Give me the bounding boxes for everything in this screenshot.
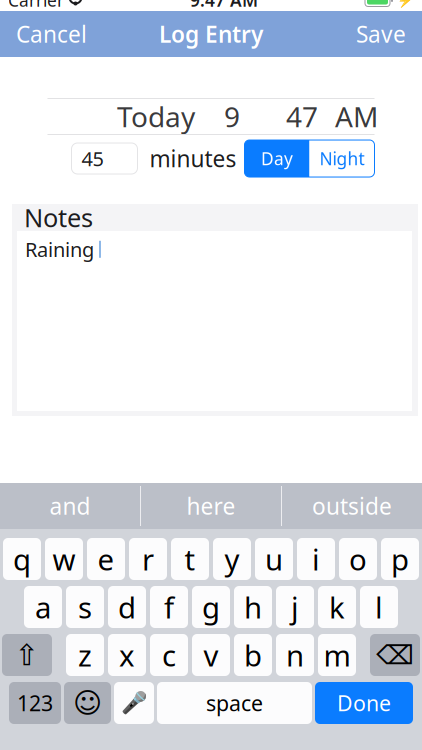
staticText: a	[35, 587, 51, 626]
button[interactable]: Done	[315, 682, 413, 724]
staticText: 123	[17, 689, 53, 717]
button[interactable]: i	[297, 538, 335, 580]
staticText: Notes	[24, 201, 93, 234]
button[interactable]: z	[66, 634, 104, 676]
button[interactable]: Day	[244, 140, 309, 177]
button[interactable]: Delete	[370, 634, 420, 676]
button[interactable]: Cancel	[0, 11, 103, 57]
staticText: outside	[312, 491, 392, 521]
button[interactable]: t	[171, 538, 209, 580]
staticText: y	[224, 539, 239, 578]
button[interactable]: y	[213, 538, 251, 580]
button[interactable]: o	[339, 538, 377, 580]
staticText: 9	[224, 98, 240, 135]
staticText: v	[203, 635, 218, 674]
button[interactable]: w	[45, 538, 83, 580]
staticText: b	[244, 635, 262, 674]
staticText: Today	[117, 98, 195, 135]
staticText: u	[265, 539, 283, 578]
button[interactable]: Shift	[2, 634, 52, 676]
staticText: j	[291, 587, 299, 626]
staticText: t	[184, 539, 195, 578]
staticText: Carrier	[8, 0, 64, 11]
staticText: m	[323, 635, 350, 674]
staticText: i	[312, 539, 320, 578]
staticText: 47	[286, 98, 318, 135]
button[interactable]: f	[150, 586, 188, 628]
staticText: q	[13, 539, 31, 578]
staticText: ⚡	[397, 0, 414, 8]
button[interactable]: k	[318, 586, 356, 628]
button[interactable]: h	[234, 586, 272, 628]
staticText: e	[97, 539, 114, 578]
button[interactable]: l	[360, 586, 398, 628]
staticText: Save	[356, 19, 406, 49]
button[interactable]: here	[141, 483, 281, 529]
staticText: Cancel	[16, 19, 87, 49]
staticText: 9:47 AM	[190, 0, 258, 11]
staticText: w	[52, 539, 75, 578]
button[interactable]: n	[276, 634, 314, 676]
staticText: c	[162, 635, 176, 674]
button[interactable]: space	[157, 682, 312, 724]
staticText: o	[349, 539, 367, 578]
staticText: Day	[261, 147, 293, 170]
button[interactable]: b	[234, 634, 272, 676]
button[interactable]: p	[381, 538, 419, 580]
button[interactable]: Night	[309, 140, 374, 177]
staticText: and	[49, 491, 90, 521]
staticText: 45	[81, 145, 103, 172]
staticText: n	[286, 635, 304, 674]
button[interactable]: q	[3, 538, 41, 580]
button[interactable]: e	[87, 538, 125, 580]
button[interactable]: Dictation	[114, 682, 154, 724]
button[interactable]: j	[276, 586, 314, 628]
button[interactable]: r	[129, 538, 167, 580]
staticText: g	[202, 587, 220, 626]
staticText: p	[391, 539, 409, 578]
staticText: f	[164, 587, 174, 626]
button[interactable]: s	[66, 586, 104, 628]
staticText: Raining	[25, 236, 94, 263]
staticText: AM	[335, 98, 378, 135]
button[interactable]: Save	[340, 11, 422, 57]
staticText: space	[206, 689, 263, 717]
button[interactable]: v	[192, 634, 230, 676]
staticText: Done	[337, 689, 391, 717]
staticText: l	[375, 587, 383, 626]
button[interactable]: c	[150, 634, 188, 676]
staticText: x	[119, 635, 135, 674]
staticText: ☺	[73, 687, 102, 719]
staticText: Night	[319, 147, 364, 170]
staticText: here	[186, 491, 235, 521]
button[interactable]: outside	[282, 483, 422, 529]
staticText: 🎤	[120, 691, 147, 715]
button[interactable]: d	[108, 586, 146, 628]
staticText: r	[142, 539, 154, 578]
staticText: minutes	[149, 143, 236, 173]
button[interactable]: x	[108, 634, 146, 676]
button[interactable]: Emoji	[64, 682, 111, 724]
staticText: Log Entry	[159, 19, 263, 49]
staticText: ⇧	[14, 638, 39, 672]
staticText: d	[118, 587, 136, 626]
staticText: z	[78, 635, 92, 674]
staticText: ⌫	[376, 640, 414, 670]
button[interactable]: m	[318, 634, 356, 676]
button[interactable]: u	[255, 538, 293, 580]
staticText: h	[244, 587, 262, 626]
button[interactable]: and	[0, 483, 140, 529]
staticText: k	[329, 587, 345, 626]
staticText: s	[78, 587, 92, 626]
button[interactable]: a	[24, 586, 62, 628]
button[interactable]: 123	[9, 682, 61, 724]
button[interactable]: g	[192, 586, 230, 628]
